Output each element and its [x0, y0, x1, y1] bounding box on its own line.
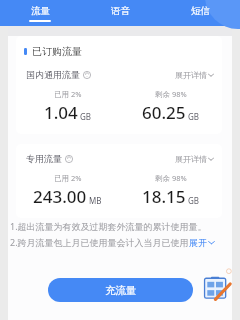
staticText: 国内通用流量: [26, 69, 80, 80]
staticText: 流量: [31, 5, 50, 17]
staticText: 60.25: [142, 101, 186, 124]
staticText: 剩余 98%: [155, 173, 187, 183]
staticText: 充流量: [105, 284, 137, 297]
staticText: 已用 2%: [54, 173, 82, 183]
staticText: GB: [188, 195, 200, 206]
staticText: 已订购流量: [32, 45, 82, 58]
button[interactable]: 意见反馈: [202, 268, 234, 300]
staticText: 剩余 98%: [155, 89, 187, 99]
staticText: 243.00: [33, 185, 87, 208]
staticText: 专用流量: [26, 153, 62, 164]
button[interactable]: 流量: [0, 0, 80, 22]
button[interactable]: 展开: [189, 237, 216, 248]
staticText: 展开: [189, 237, 207, 248]
button[interactable]: 展开详情: [175, 154, 215, 164]
staticText: GB: [80, 111, 92, 122]
staticText: 已用 2%: [54, 89, 82, 99]
staticText: 18.15: [142, 185, 186, 208]
staticText: 短信: [191, 5, 210, 17]
staticText: 1.04: [44, 101, 78, 124]
staticText: 展开详情: [175, 154, 207, 164]
staticText: 2.跨月流量包上月已使用量会计入当月已使用: [10, 236, 189, 248]
button[interactable]: 语音: [80, 0, 160, 17]
button[interactable]: 充流量: [48, 278, 193, 302]
staticText: MB: [89, 195, 102, 206]
button[interactable]: 展开详情: [175, 70, 215, 80]
staticText: 1.超出流量为有效及过期套外流量的累计使用量。: [10, 220, 207, 232]
button[interactable]: 短信: [160, 0, 240, 17]
staticText: GB: [188, 111, 200, 122]
staticText: 展开详情: [175, 70, 207, 80]
staticText: 语音: [111, 5, 130, 17]
